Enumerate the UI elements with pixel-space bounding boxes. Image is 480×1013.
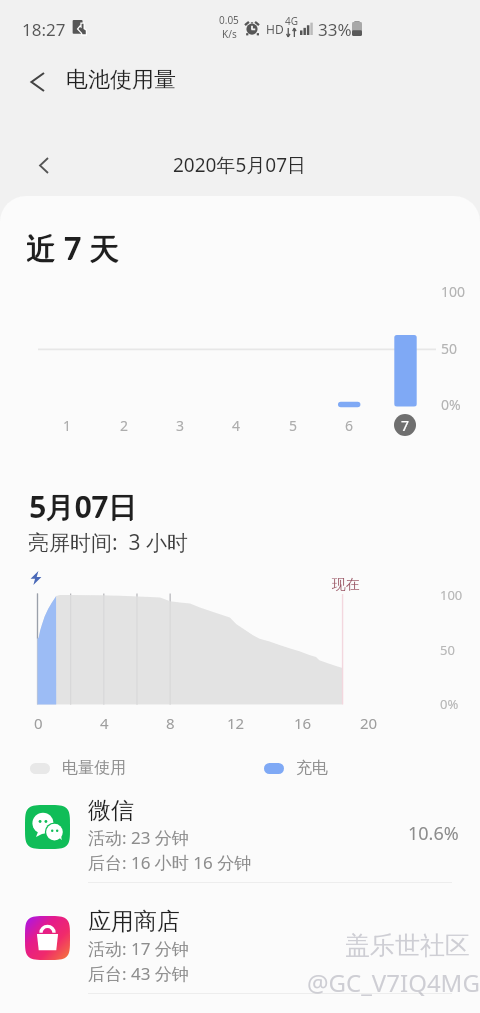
staticText: 50 bbox=[440, 641, 455, 659]
staticText: 1 bbox=[63, 416, 72, 435]
staticText: 0 bbox=[34, 713, 43, 733]
staticText: 100 bbox=[441, 282, 466, 301]
staticText: 33% bbox=[318, 18, 352, 41]
staticText: 活动: 23 分钟 bbox=[88, 826, 189, 849]
staticText: 近 7 天 bbox=[26, 227, 119, 268]
staticText: 16 bbox=[294, 713, 312, 733]
button[interactable]: Back bbox=[13, 58, 61, 106]
staticText: 6 bbox=[345, 416, 354, 435]
button[interactable]: 4 bbox=[225, 414, 247, 436]
staticText: 5月07日 bbox=[29, 486, 137, 526]
staticText: @GC_V7IQ4MG bbox=[307, 966, 480, 999]
staticText: 18:27 bbox=[22, 18, 66, 41]
button[interactable]: 3 bbox=[169, 414, 191, 436]
staticText: K/s bbox=[222, 27, 237, 41]
staticText: 盖乐世社区 bbox=[345, 930, 470, 961]
staticText: 4G bbox=[285, 14, 298, 28]
button[interactable]: 1 bbox=[56, 414, 78, 436]
button[interactable]: 应用商店 bbox=[0, 901, 480, 1012]
staticText: 电量使用 bbox=[62, 758, 126, 778]
staticText: 4 bbox=[232, 416, 241, 435]
staticText: 活动: 17 分钟 bbox=[88, 937, 189, 960]
staticText: 电池使用量 bbox=[66, 66, 176, 94]
staticText: 2020年5月07日 bbox=[173, 152, 307, 178]
staticText: 5月07日 bbox=[29, 487, 137, 527]
staticText: 0% bbox=[440, 695, 459, 713]
staticText: 50 bbox=[441, 339, 458, 358]
staticText: 20 bbox=[360, 713, 378, 733]
staticText: 后台: 16 小时 16 分钟 bbox=[88, 851, 252, 874]
button[interactable]: Previous day bbox=[24, 146, 62, 184]
staticText: 应用商店 bbox=[88, 907, 180, 936]
staticText: 10.6% bbox=[408, 821, 459, 846]
staticText: 4 bbox=[100, 713, 109, 733]
staticText: 亮屏时间: 3 小时 bbox=[28, 528, 189, 557]
staticText: 近 7 天 bbox=[26, 228, 119, 269]
staticText: 3 bbox=[176, 416, 185, 435]
staticText: 微信 bbox=[88, 796, 134, 825]
staticText: 5 bbox=[289, 416, 298, 435]
button[interactable]: 5 bbox=[282, 414, 304, 436]
staticText: 0.05 bbox=[219, 13, 239, 27]
staticText: 100 bbox=[440, 586, 463, 604]
staticText: 2 bbox=[120, 416, 129, 435]
staticText: 5月07日 bbox=[30, 486, 138, 526]
button[interactable]: 6 bbox=[338, 414, 360, 436]
staticText: 0% bbox=[441, 395, 461, 414]
staticText: 近 7 天 bbox=[27, 227, 120, 268]
staticText: 7 bbox=[401, 416, 410, 435]
staticText: 后台: 43 分钟 bbox=[88, 962, 189, 985]
staticText: 现在 bbox=[332, 576, 360, 594]
button[interactable]: 2 bbox=[113, 414, 135, 436]
button[interactable]: 微信 bbox=[0, 790, 480, 901]
button[interactable]: 7 bbox=[394, 414, 416, 436]
staticText: 8 bbox=[166, 713, 175, 733]
staticText: 充电 bbox=[296, 758, 328, 778]
staticText: 12 bbox=[227, 713, 245, 733]
staticText: HD bbox=[266, 21, 284, 37]
